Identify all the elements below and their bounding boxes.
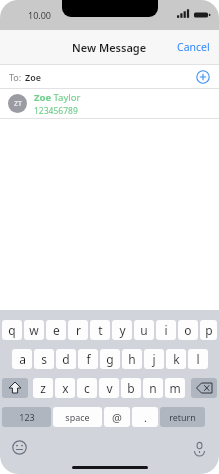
- button[interactable]: b: [121, 378, 141, 398]
- button[interactable]: t: [90, 320, 110, 340]
- staticText: Zoe: [25, 71, 42, 83]
- staticText: .: [144, 410, 147, 425]
- button[interactable]: v: [99, 378, 119, 398]
- button[interactable]: e: [46, 320, 66, 340]
- button[interactable]: Dictation: [192, 440, 207, 455]
- staticText: a: [19, 351, 26, 367]
- staticText: g: [106, 351, 114, 367]
- staticText: New Message: [72, 40, 147, 55]
- staticText: return: [169, 411, 196, 423]
- button[interactable]: Cancel: [168, 33, 219, 61]
- button[interactable]: s: [34, 349, 54, 369]
- button[interactable]: ZT: [0, 89, 219, 118]
- button[interactable]: g: [100, 349, 120, 369]
- button[interactable]: To:: [0, 65, 219, 88]
- button[interactable]: a: [12, 349, 32, 369]
- button[interactable]: d: [56, 349, 76, 369]
- staticText: p: [205, 322, 213, 338]
- staticText: j: [152, 351, 156, 367]
- staticText: z: [40, 380, 46, 396]
- staticText: @: [112, 410, 122, 425]
- staticText: m: [169, 380, 181, 396]
- button[interactable]: 123: [2, 407, 51, 427]
- staticText: r: [76, 322, 81, 338]
- button[interactable]: .: [132, 407, 158, 427]
- staticText: v: [106, 380, 113, 396]
- staticText: n: [149, 380, 157, 396]
- staticText: q: [8, 322, 16, 338]
- button[interactable]: return: [160, 407, 205, 427]
- button[interactable]: Add contact: [196, 70, 210, 84]
- staticText: y: [119, 322, 126, 338]
- button[interactable]: i: [156, 320, 176, 340]
- button[interactable]: y: [112, 320, 132, 340]
- staticText: 10.00: [28, 9, 52, 21]
- button[interactable]: z: [33, 378, 53, 398]
- button[interactable]: space: [53, 407, 102, 427]
- button[interactable]: r: [68, 320, 88, 340]
- staticText: c: [84, 380, 90, 396]
- staticText: u: [140, 322, 148, 338]
- button[interactable]: w: [24, 320, 44, 340]
- staticText: To:: [9, 71, 22, 83]
- button[interactable]: k: [166, 349, 186, 369]
- staticText: Zoe Taylor: [34, 91, 81, 104]
- button[interactable]: f: [78, 349, 98, 369]
- button[interactable]: m: [165, 378, 185, 398]
- button[interactable]: c: [77, 378, 97, 398]
- button[interactable]: l: [188, 349, 208, 369]
- button[interactable]: o: [178, 320, 198, 340]
- button[interactable]: p: [200, 320, 217, 340]
- staticText: ZT: [14, 99, 22, 109]
- staticText: f: [86, 351, 91, 367]
- staticText: 123: [19, 411, 35, 423]
- button[interactable]: @: [104, 407, 130, 427]
- staticText: Cancel: [177, 40, 210, 54]
- button[interactable]: j: [144, 349, 164, 369]
- button[interactable]: x: [55, 378, 75, 398]
- staticText: t: [98, 322, 103, 338]
- button[interactable]: h: [122, 349, 142, 369]
- button[interactable]: n: [143, 378, 163, 398]
- staticText: e: [53, 322, 60, 338]
- staticText: space: [65, 411, 90, 423]
- staticText: l: [196, 351, 200, 367]
- button[interactable]: Delete: [191, 378, 217, 398]
- staticText: o: [184, 322, 192, 338]
- staticText: x: [62, 380, 69, 396]
- staticText: b: [127, 380, 135, 396]
- button[interactable]: q: [2, 320, 22, 340]
- staticText: d: [62, 351, 70, 367]
- staticText: k: [173, 351, 180, 367]
- staticText: s: [41, 351, 47, 367]
- staticText: i: [164, 322, 168, 338]
- staticText: 123456789: [34, 105, 78, 117]
- button[interactable]: u: [134, 320, 154, 340]
- button[interactable]: Emoji: [12, 440, 27, 455]
- staticText: h: [128, 351, 136, 367]
- button[interactable]: Shift: [2, 378, 28, 398]
- staticText: w: [29, 322, 39, 338]
